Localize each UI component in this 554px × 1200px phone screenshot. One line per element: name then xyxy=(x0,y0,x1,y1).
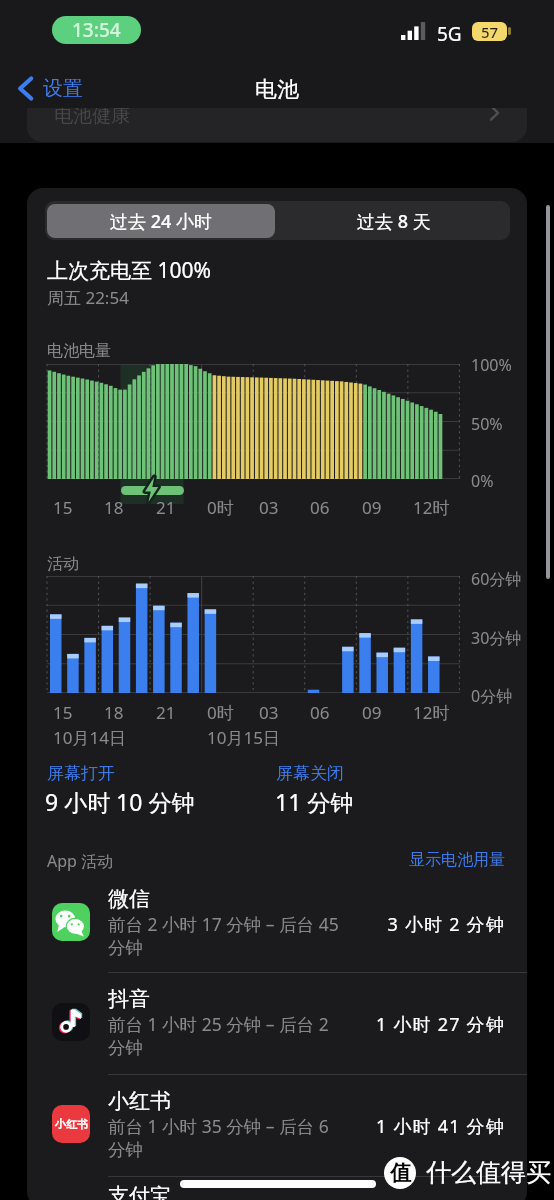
staticText: 设置 xyxy=(43,76,83,101)
staticText: 0时 xyxy=(207,701,234,724)
staticText: 12时 xyxy=(413,701,450,724)
button[interactable]: 过去 24 小时 xyxy=(47,204,275,238)
staticText: 分钟 xyxy=(108,937,143,959)
staticText: 前台 1 小时 25 分钟 – 后台 2 xyxy=(108,1012,329,1036)
staticText: 3 小时 2 分钟 xyxy=(360,912,505,937)
staticText: 06 xyxy=(310,701,330,724)
staticText: 过去 24 小时 xyxy=(110,209,212,234)
staticText: 前台 2 小时 17 分钟 – 后台 45 xyxy=(108,912,339,936)
staticText: 分钟 xyxy=(108,1139,143,1161)
staticText: 上次充电至 100% xyxy=(47,256,211,285)
button[interactable]: 抖音 xyxy=(27,970,527,1070)
button[interactable]: 显示电池用量 xyxy=(409,850,505,870)
staticText: 13:54 xyxy=(72,17,121,43)
staticText: 显示电池用量 xyxy=(409,850,505,870)
staticText: 小红书 xyxy=(55,1117,88,1131)
staticText: 10月15日 xyxy=(207,726,280,749)
other: Back xyxy=(18,76,33,101)
staticText: 30分钟 xyxy=(471,627,522,649)
staticText: 值 xyxy=(390,1160,411,1186)
staticText: 15 xyxy=(53,496,73,519)
staticText: 0时 xyxy=(207,496,234,519)
staticText: 21 xyxy=(156,496,176,519)
staticText: 前台 1 小时 35 分钟 – 后台 6 xyxy=(108,1114,329,1138)
staticText: 18 xyxy=(104,701,124,724)
staticText: 分钟 xyxy=(108,1037,143,1059)
staticText: 15 xyxy=(53,701,73,724)
button[interactable]: 微信 xyxy=(27,870,527,970)
staticText: 活动 xyxy=(47,554,79,574)
staticText: 10月14日 xyxy=(53,726,126,749)
staticText: 小红书 xyxy=(108,1088,171,1114)
button[interactable]: 支付宝 xyxy=(27,1167,527,1200)
staticText: 09 xyxy=(362,701,382,724)
staticText: 什么值得买 xyxy=(426,1157,551,1188)
staticText: 09 xyxy=(362,496,382,519)
staticText: 0% xyxy=(471,470,494,492)
staticText: 100% xyxy=(471,354,512,376)
staticText: 屏幕关闭 xyxy=(276,763,344,784)
button[interactable]: 小红书 xyxy=(27,1072,527,1172)
staticText: 5G xyxy=(437,21,462,47)
staticText: 1 小时 27 分钟 xyxy=(360,1012,505,1037)
staticText: 0分钟 xyxy=(471,685,513,707)
staticText: 电池 xyxy=(255,76,299,104)
staticText: 屏幕打开 xyxy=(47,763,115,784)
staticText: 电池健康 xyxy=(54,108,130,128)
staticText: 11 分钟 xyxy=(275,786,354,817)
staticText: 抖音 xyxy=(108,986,150,1012)
staticText: 50% xyxy=(471,413,503,435)
staticText: App 活动 xyxy=(47,850,114,872)
staticText: 57 xyxy=(481,22,499,41)
staticText: 1 小时 41 分钟 xyxy=(360,1114,505,1139)
staticText: 周五 22:54 xyxy=(47,286,129,309)
staticText: 18 xyxy=(104,496,124,519)
staticText: 9 小时 10 分钟 xyxy=(45,786,195,817)
button[interactable]: 过去 8 天 xyxy=(279,204,508,238)
button[interactable]: Back xyxy=(18,76,83,101)
staticText: 支付宝 xyxy=(108,1183,171,1200)
staticText: 03 xyxy=(259,701,279,724)
staticText: 12时 xyxy=(413,496,450,519)
staticText: 电池电量 xyxy=(47,341,111,361)
staticText: 60分钟 xyxy=(471,568,522,590)
staticText: 03 xyxy=(259,496,279,519)
staticText: 微信 xyxy=(108,886,150,912)
staticText: 06 xyxy=(310,496,330,519)
button[interactable]: 电池健康 xyxy=(27,108,527,142)
staticText: 21 xyxy=(156,701,176,724)
staticText: 过去 8 天 xyxy=(357,209,431,234)
